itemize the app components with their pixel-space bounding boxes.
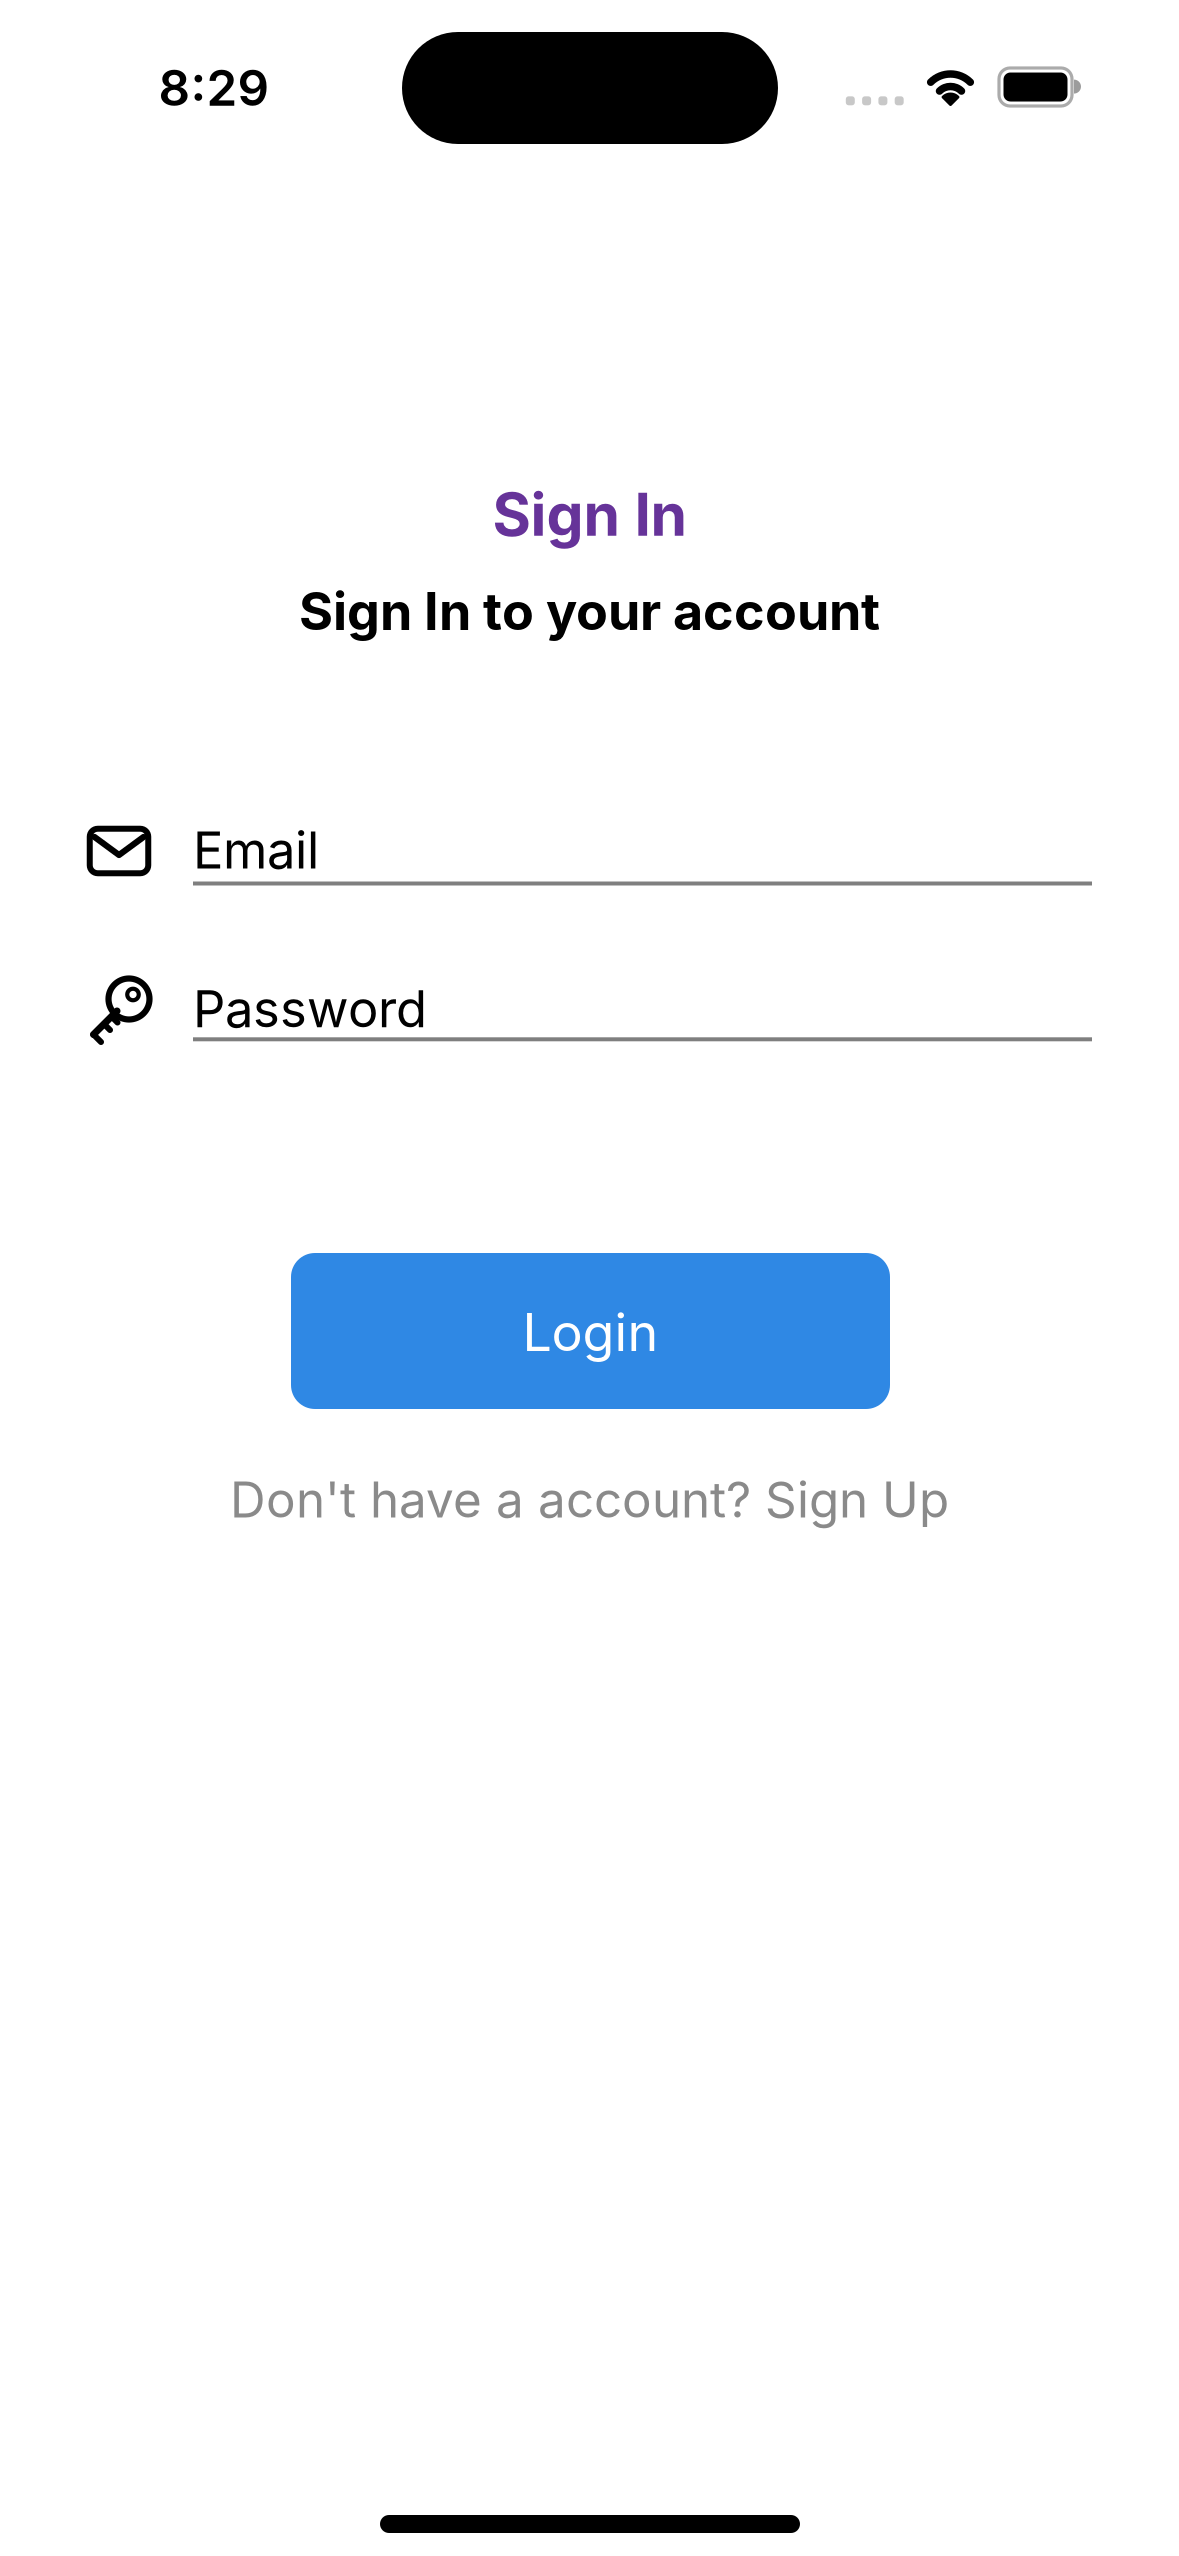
staticText: Email	[193, 820, 319, 880]
staticText: Sign In to your account	[299, 580, 880, 642]
staticText: 8:29	[158, 59, 269, 117]
staticText: Password	[193, 979, 427, 1039]
staticText: Don't have a account? Sign Up	[230, 1470, 949, 1529]
staticText: Sign In	[492, 480, 687, 549]
staticText: Login	[522, 1301, 658, 1363]
